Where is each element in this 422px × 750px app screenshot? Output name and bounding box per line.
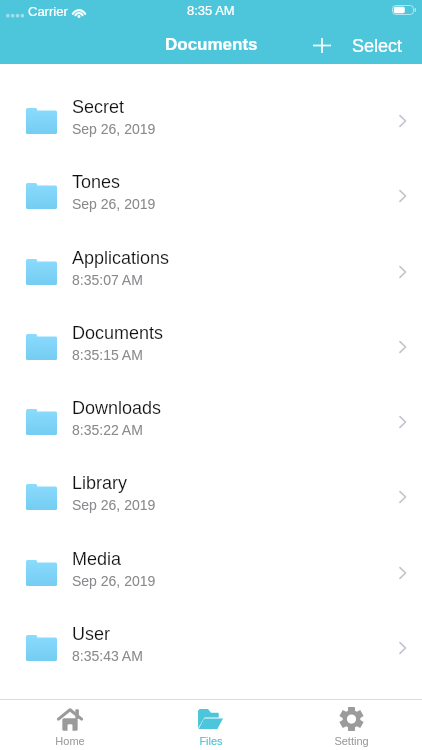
staticText: Library: [72, 473, 128, 493]
button[interactable]: Tones: [0, 156, 422, 231]
staticText: Files: [199, 735, 223, 747]
button[interactable]: Home: [0, 700, 140, 747]
staticText: Downloads: [72, 398, 162, 418]
staticText: Applications: [72, 248, 170, 268]
button[interactable]: Add: [305, 28, 339, 62]
staticText: Select: [352, 36, 403, 56]
staticText: Sep 26, 2019: [72, 196, 156, 212]
staticText: 8:35:07 AM: [72, 272, 143, 288]
button[interactable]: Applications: [0, 232, 422, 307]
staticText: Documents: [72, 323, 164, 343]
button[interactable]: Select: [350, 28, 405, 64]
button[interactable]: Media: [0, 533, 422, 608]
staticText: Media: [72, 549, 122, 569]
button[interactable]: Downloads: [0, 382, 422, 457]
staticText: Sep 26, 2019: [72, 497, 156, 513]
staticText: Home: [55, 735, 85, 747]
button[interactable]: User: [0, 608, 422, 683]
staticText: 8:35:43 AM: [72, 648, 143, 664]
staticText: Setting: [334, 735, 369, 747]
staticText: User: [72, 624, 111, 644]
staticText: 8:35 AM: [187, 3, 235, 18]
staticText: Documents: [165, 35, 258, 54]
button[interactable]: Secret: [0, 81, 422, 156]
button[interactable]: Documents: [0, 307, 422, 382]
staticText: Secret: [72, 97, 125, 117]
staticText: Carrier: [28, 4, 68, 19]
staticText: 8:35:22 AM: [72, 422, 143, 438]
button[interactable]: Library: [0, 457, 422, 532]
button[interactable]: Files: [140, 700, 281, 747]
staticText: 8:35:15 AM: [72, 347, 143, 363]
staticText: Tones: [72, 172, 121, 192]
button[interactable]: Setting: [281, 700, 422, 747]
staticText: Sep 26, 2019: [72, 573, 156, 589]
staticText: Sep 26, 2019: [72, 121, 156, 137]
